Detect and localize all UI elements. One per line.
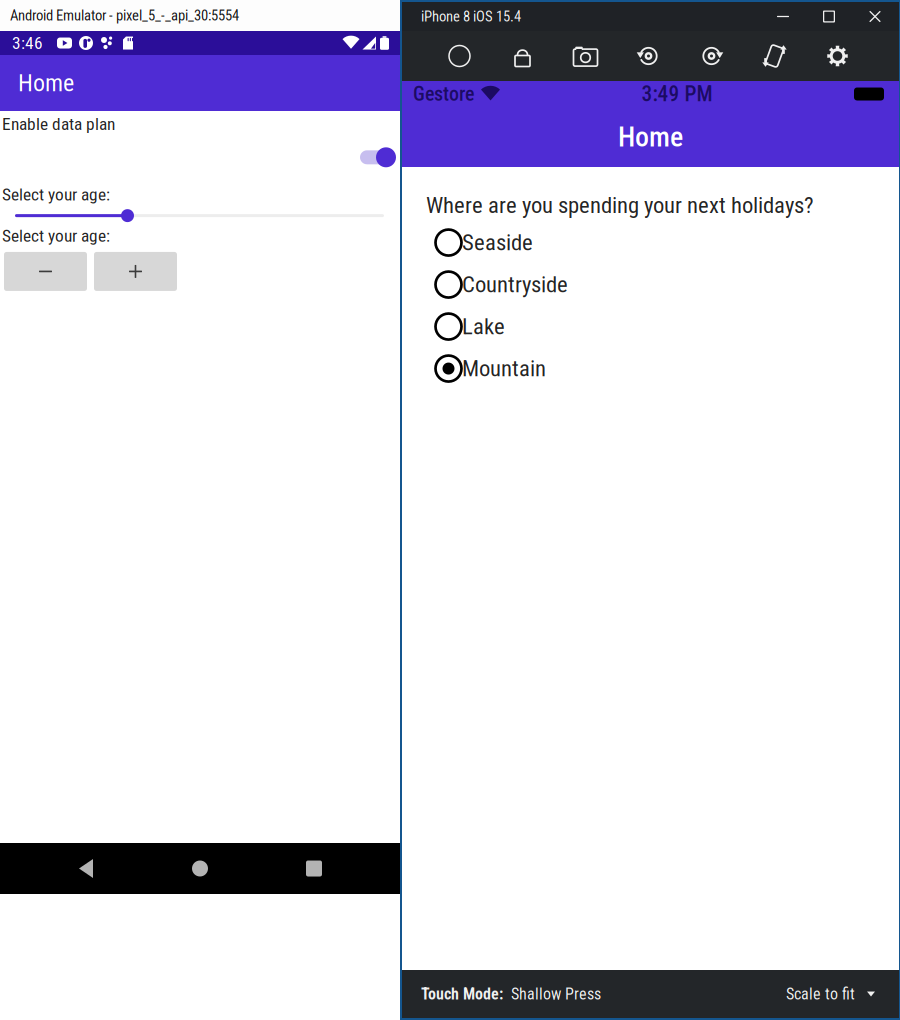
- button[interactable]: Seaside: [426, 222, 887, 264]
- staticText: Seaside: [462, 229, 533, 256]
- button[interactable]: Mountain: [426, 348, 887, 390]
- staticText: Home: [618, 121, 683, 153]
- staticText: iPhone 8 iOS 15.4: [421, 8, 521, 25]
- staticText: Select your age:: [2, 226, 110, 246]
- button[interactable]: Enable data plan: [358, 146, 396, 168]
- button[interactable]: Scale to fit: [786, 985, 875, 1003]
- button[interactable]: Close: [852, 1, 898, 32]
- button[interactable]: Back: [58, 843, 114, 894]
- button[interactable]: Lake: [426, 306, 887, 348]
- staticText: Where are you spending your next holiday…: [426, 192, 814, 219]
- button[interactable]: Decrease age: [4, 252, 87, 291]
- button[interactable]: Shake: [743, 32, 806, 80]
- staticText: Touch Mode:: [421, 985, 503, 1003]
- staticText: 3:49 PM: [641, 81, 712, 106]
- staticText: Enable data plan: [2, 114, 115, 134]
- staticText: Shallow Press: [511, 985, 601, 1003]
- button[interactable]: Screenshot: [554, 32, 617, 80]
- staticText: Scale to fit: [786, 985, 855, 1003]
- button[interactable]: Home: [172, 843, 228, 894]
- button[interactable]: Home: [428, 32, 491, 80]
- button[interactable]: Minimize: [760, 1, 806, 32]
- button[interactable]: Lock: [491, 32, 554, 80]
- button[interactable]: Rotate left: [617, 32, 680, 80]
- staticText: Select your age:: [2, 184, 110, 205]
- button[interactable]: Increase age: [94, 252, 177, 291]
- staticText: Countryside: [462, 271, 568, 298]
- button[interactable]: Select your age slider: [15, 208, 384, 224]
- staticText: 3:46: [12, 33, 43, 53]
- button[interactable]: Rotate right: [680, 32, 743, 80]
- staticText: Home: [18, 69, 74, 97]
- button[interactable]: Countryside: [426, 264, 887, 306]
- staticText: Gestore: [413, 82, 474, 106]
- button[interactable]: Maximize: [806, 1, 852, 32]
- staticText: Mountain: [462, 355, 546, 382]
- staticText: Lake: [462, 313, 505, 340]
- staticText: Android Emulator - pixel_5_-_api_30:5554: [10, 7, 239, 24]
- button[interactable]: Settings: [806, 32, 869, 80]
- button[interactable]: Recents: [286, 843, 342, 894]
